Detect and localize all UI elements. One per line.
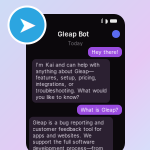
staticText: Hey there! xyxy=(91,49,118,55)
staticText: ıl xyxy=(101,17,103,25)
staticText: Gleap Bot xyxy=(57,30,88,38)
staticText: ◗ xyxy=(105,17,108,24)
staticText: Today xyxy=(68,41,83,46)
staticText: I'm Kai and can help with anything about… xyxy=(35,62,106,100)
staticText: What is Gleap? xyxy=(80,107,118,113)
staticText: Gleap is a bug reporting and customer fe… xyxy=(32,119,109,150)
staticText: ➤ xyxy=(17,12,36,38)
